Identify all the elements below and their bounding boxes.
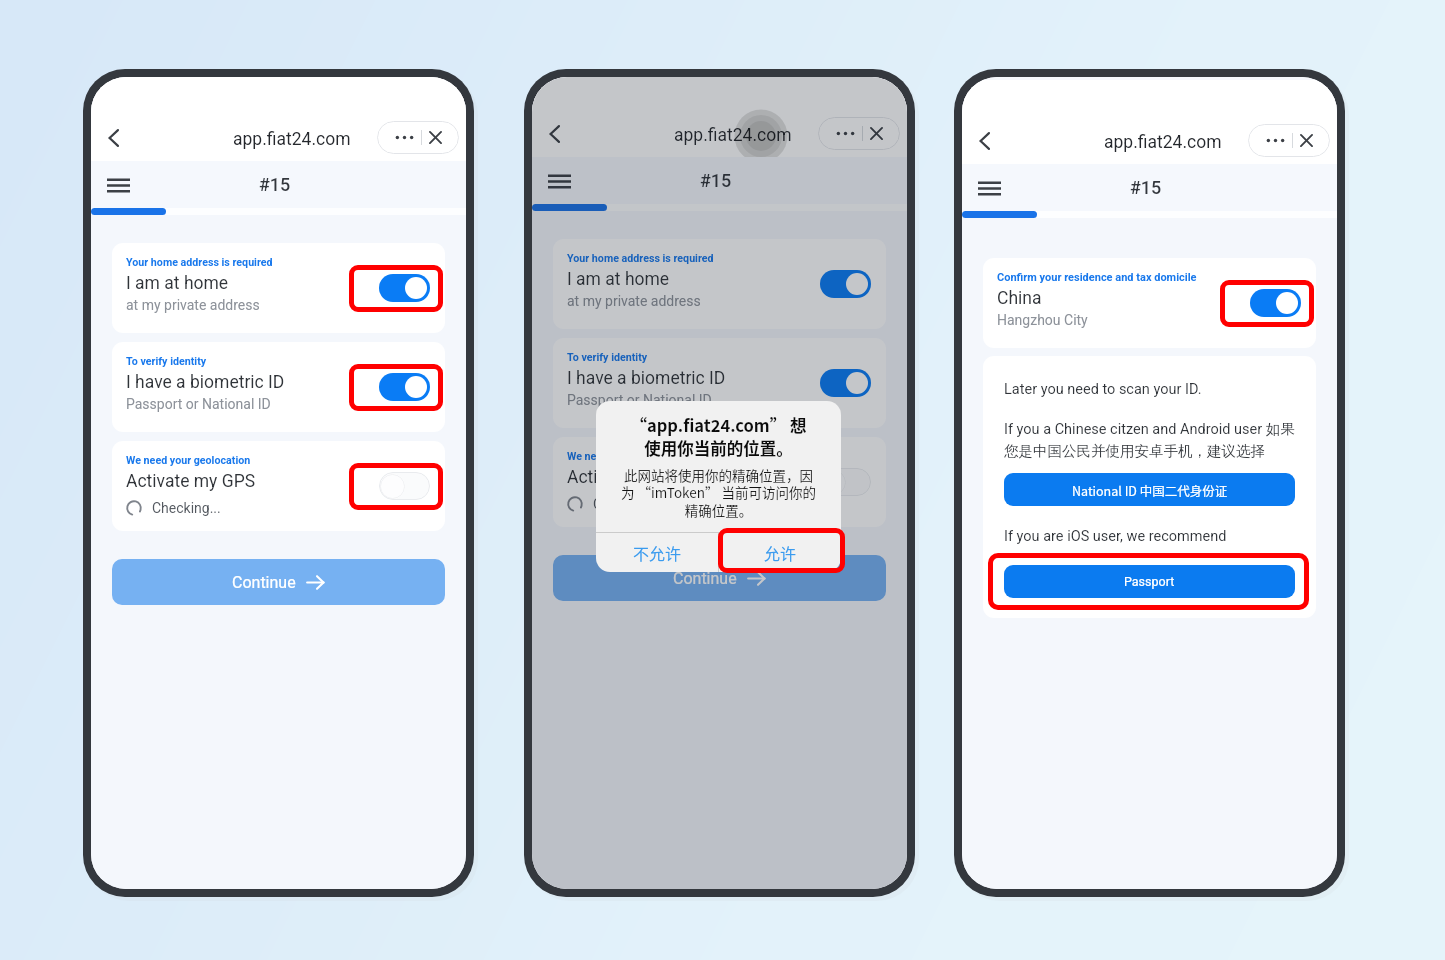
staticText: Activate my GPS — [126, 471, 256, 492]
button[interactable]: Open menu — [100, 167, 136, 203]
button[interactable]: More options and close tab — [1248, 124, 1330, 157]
button[interactable]: National ID 中国二代身份证 — [1004, 473, 1295, 506]
staticText: Your home address is required — [126, 256, 273, 269]
staticText: “app.fiat24.com” 想 使用你当前的位置。 — [606, 413, 831, 460]
button[interactable]: Back — [966, 122, 1004, 160]
staticText: app.fiat24.com — [674, 125, 792, 146]
staticText: Continue — [232, 573, 296, 592]
staticText: Your home address is required — [567, 252, 714, 265]
staticText: National ID 中国二代身份证 — [1072, 481, 1228, 499]
staticText: I am at home — [126, 273, 229, 294]
staticText: Checking... — [152, 500, 221, 516]
staticText: app.fiat24.com — [1104, 132, 1222, 153]
button[interactable]: 允许 — [719, 533, 841, 572]
staticText: If you a Chinese citzen and Android user… — [1004, 420, 1295, 461]
staticText: We need your geolocation — [567, 450, 692, 463]
staticText: Passport or National ID — [567, 392, 712, 408]
staticText: Hangzhou City — [997, 312, 1088, 328]
staticText: #15 — [700, 170, 732, 191]
staticText: China — [997, 288, 1042, 309]
staticText: I have a biometric ID — [126, 372, 285, 393]
staticText: app.fiat24.com — [233, 129, 351, 150]
staticText: If you are iOS user, we recommend — [1004, 528, 1227, 545]
staticText: I am at home — [567, 269, 670, 290]
staticText: Checking... — [593, 496, 662, 512]
button[interactable]: Toggle switch — [379, 373, 430, 401]
button[interactable]: Open menu — [541, 163, 577, 199]
button[interactable]: Open menu — [971, 170, 1007, 206]
button[interactable]: 不允许 — [596, 533, 718, 572]
staticText: 允许 — [764, 541, 797, 564]
button[interactable]: Toggle switch — [1250, 289, 1301, 317]
button[interactable]: Toggle switch — [379, 472, 430, 500]
staticText: Later you need to scan your ID. — [1004, 381, 1202, 398]
staticText: #15 — [259, 174, 291, 195]
button[interactable]: Passport — [1004, 565, 1295, 598]
staticText: #15 — [1130, 177, 1162, 198]
button[interactable]: Toggle switch — [379, 274, 430, 302]
button[interactable]: Toggle switch — [820, 270, 871, 298]
staticText: I have a biometric ID — [567, 368, 726, 389]
button[interactable]: Back — [536, 115, 574, 153]
staticText: Activate my GPS — [567, 467, 697, 488]
staticText: at my private address — [126, 297, 260, 313]
staticText: To verify identity — [126, 355, 207, 368]
staticText: Continue — [673, 569, 737, 588]
staticText: Passport — [1124, 574, 1175, 589]
staticText: 此网站将使用你的精确位置，因 为 “imToken” 当前可访问你的 精确位置。 — [606, 465, 831, 520]
button[interactable]: Continue — [553, 555, 886, 601]
button[interactable]: Back — [95, 119, 133, 157]
button[interactable]: Toggle switch — [820, 369, 871, 397]
staticText: Passport or National ID — [126, 396, 271, 412]
staticText: To verify identity — [567, 351, 648, 364]
staticText: Confirm your residence and tax domicile — [997, 271, 1197, 284]
button[interactable]: More options and close tab — [818, 117, 900, 150]
staticText: at my private address — [567, 293, 701, 309]
staticText: We need your geolocation — [126, 454, 251, 467]
staticText: 不允许 — [633, 541, 682, 564]
button[interactable]: More options and close tab — [377, 121, 459, 154]
button[interactable]: Toggle switch — [820, 468, 871, 496]
button[interactable]: Continue — [112, 559, 445, 605]
